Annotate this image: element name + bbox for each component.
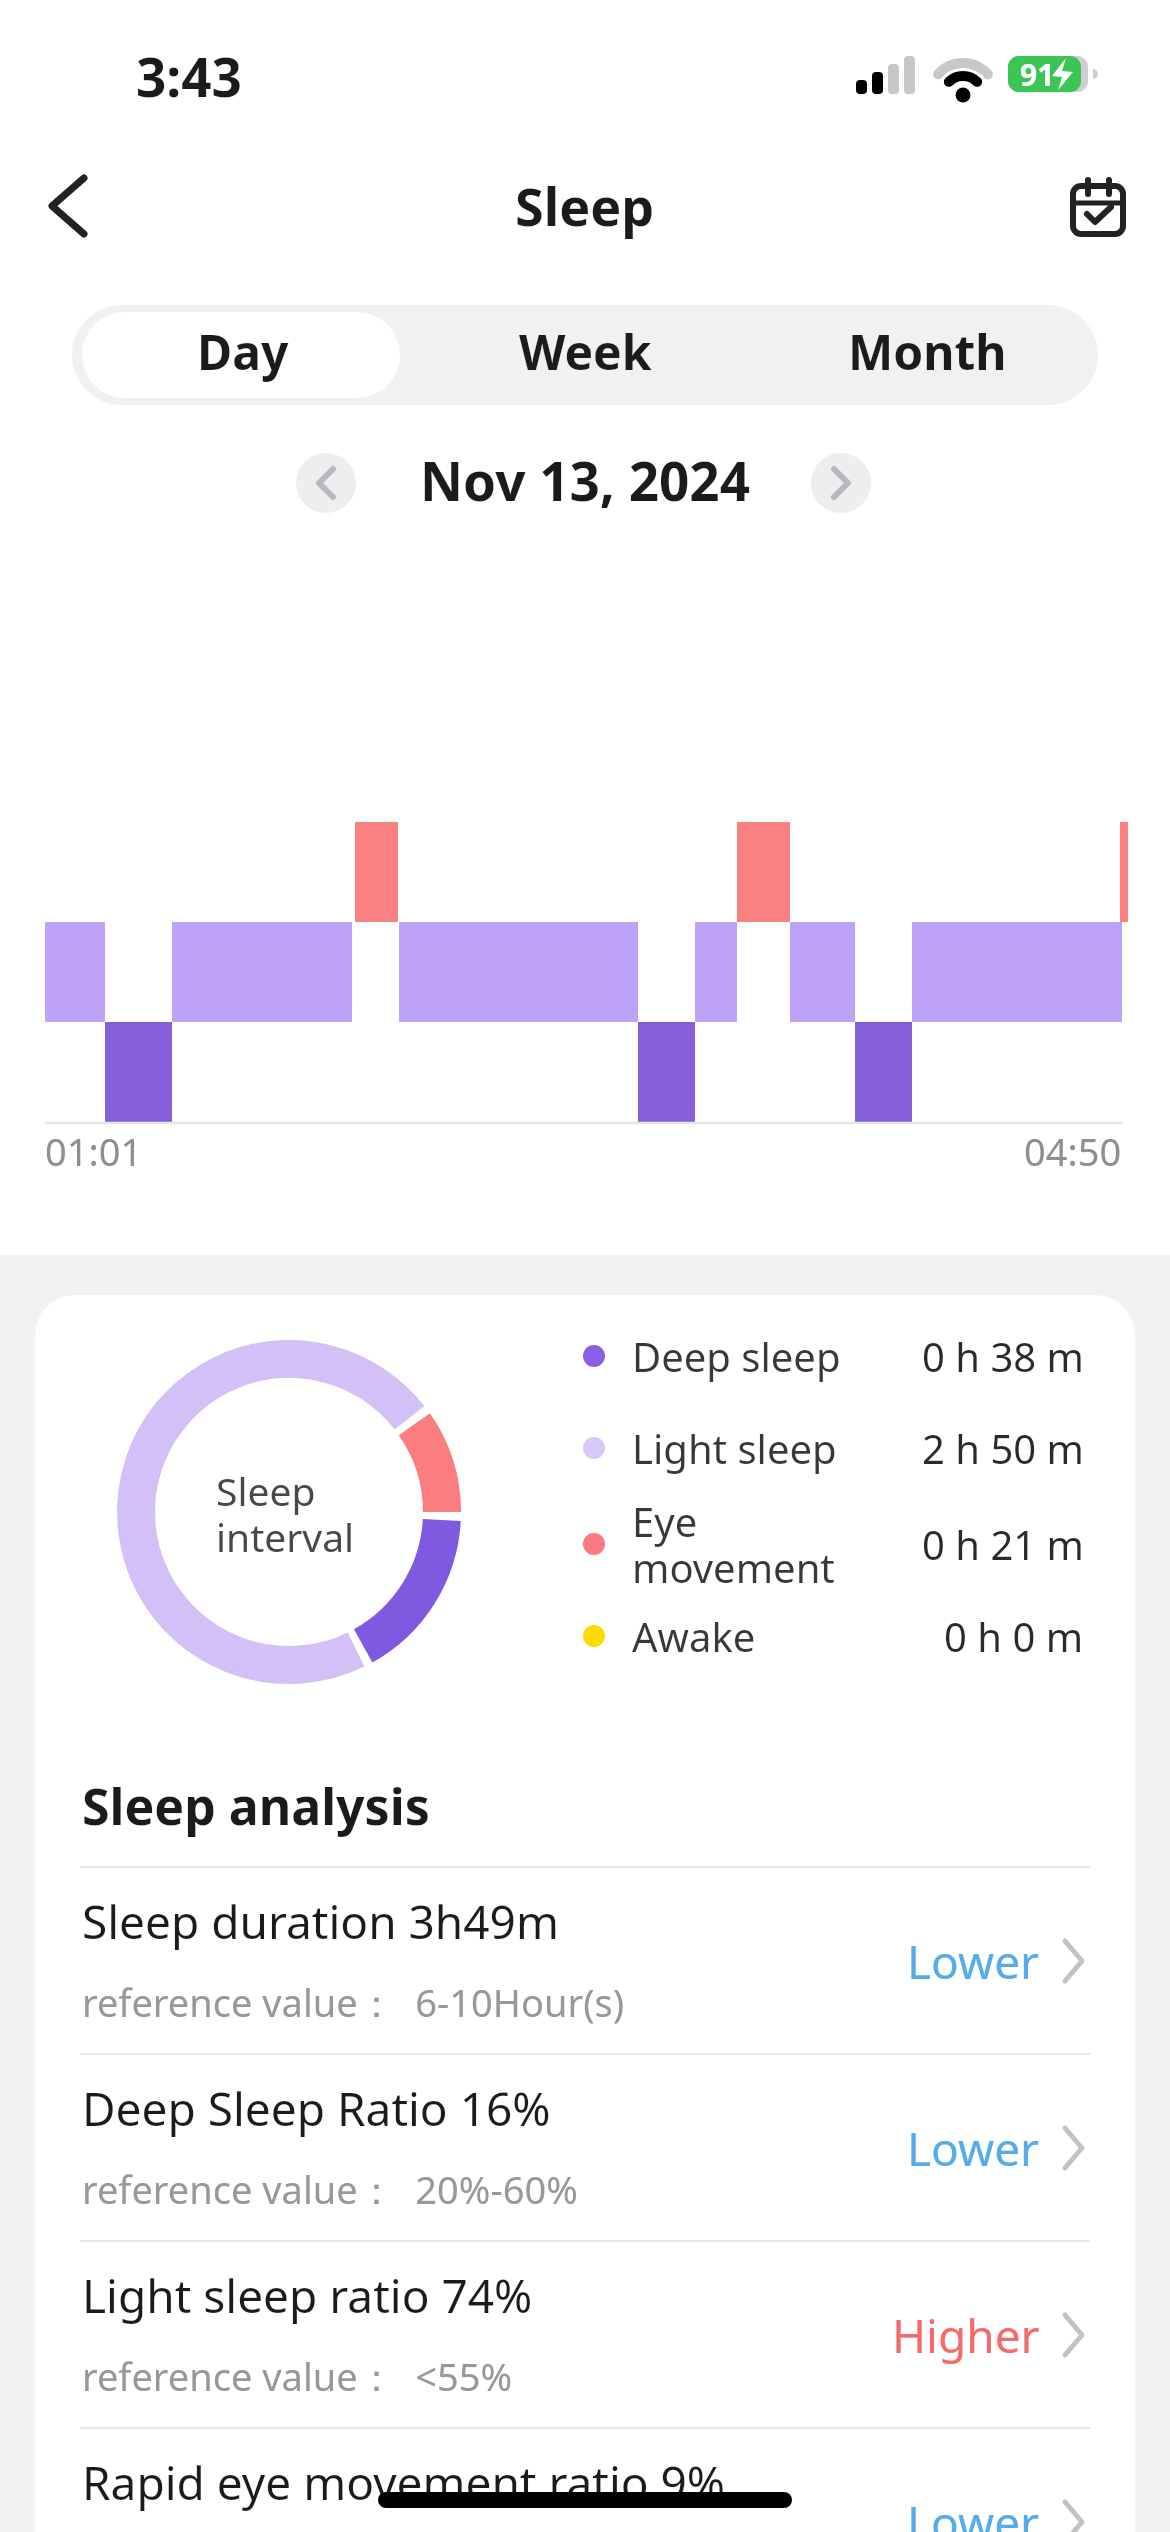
staticText: 2 h 50 m: [922, 1421, 1084, 1475]
staticText: Lower: [907, 1930, 1040, 1993]
staticText: Day: [197, 319, 289, 384]
button[interactable]: [35, 2240, 1135, 2410]
staticText: 3:43: [136, 40, 242, 112]
staticText: Sleep interval: [216, 1464, 355, 1564]
staticText: Rapid eye movement ratio 9%: [82, 2451, 726, 2514]
staticText: 91: [1020, 54, 1055, 95]
staticText: Higher: [892, 2304, 1040, 2367]
staticText: 0 h 38 m: [922, 1329, 1084, 1383]
staticText: Lower: [907, 2117, 1040, 2180]
staticText: reference value： <55%: [82, 2350, 513, 2402]
staticText: Sleep: [515, 170, 655, 241]
staticText: Sleep duration 3h49m: [82, 1890, 559, 1953]
staticText: Light sleep ratio 74%: [82, 2264, 533, 2327]
staticText: 0 h 0 m: [944, 1609, 1084, 1663]
button[interactable]: [414, 305, 756, 405]
button[interactable]: [35, 2053, 1135, 2223]
button[interactable]: [72, 305, 414, 405]
staticText: Month: [848, 319, 1007, 384]
staticText: 01:01: [45, 1125, 143, 1177]
staticText: Awake: [632, 1609, 756, 1663]
button[interactable]: [756, 305, 1098, 405]
staticText: Eye movement: [632, 1494, 835, 1595]
button[interactable]: [811, 453, 871, 513]
staticText: Deep sleep: [632, 1329, 841, 1383]
button[interactable]: [35, 1866, 1135, 2036]
staticText: Light sleep: [632, 1421, 837, 1475]
button[interactable]: [296, 453, 356, 513]
staticText: Sleep analysis: [82, 1772, 430, 1840]
staticText: Nov 13, 2024: [420, 444, 750, 516]
staticText: 04:50: [1024, 1125, 1122, 1177]
staticText: Deep Sleep Ratio 16%: [82, 2077, 551, 2140]
staticText: reference value： 6-10Hour(s): [82, 1976, 625, 2028]
staticText: Week: [519, 319, 652, 384]
staticText: Lower: [907, 2491, 1040, 2532]
staticText: reference value： 20%-60%: [82, 2163, 578, 2215]
button[interactable]: [35, 2427, 1135, 2532]
button[interactable]: [30, 168, 106, 244]
staticText: 0 h 21 m: [922, 1517, 1084, 1571]
button[interactable]: [1058, 168, 1138, 244]
